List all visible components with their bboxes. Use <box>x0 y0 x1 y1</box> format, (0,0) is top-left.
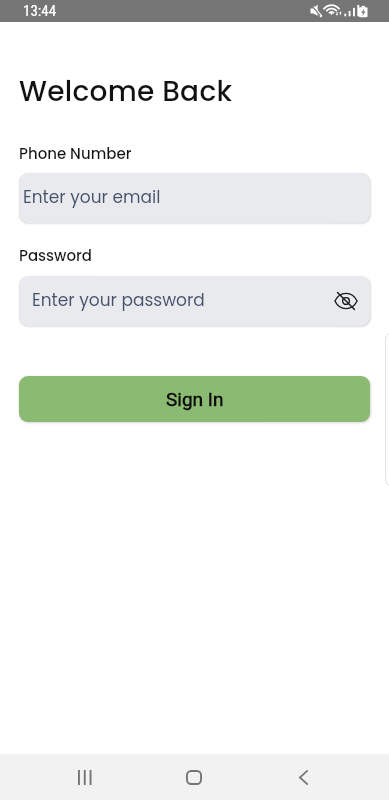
staticText: Welcome Back <box>19 72 233 111</box>
staticText: Enter your password <box>32 288 205 312</box>
button[interactable]: Back <box>283 760 323 794</box>
button[interactable]: Sign In <box>19 376 370 422</box>
staticText: Sign In <box>166 388 224 410</box>
button[interactable]: Toggle password visibility <box>333 288 359 314</box>
staticText: Password <box>19 245 92 266</box>
button[interactable]: Enter your password <box>19 276 370 326</box>
button[interactable]: Home <box>174 760 214 794</box>
staticText: Phone Number <box>19 143 132 164</box>
button[interactable]: Recent apps <box>65 760 105 794</box>
button[interactable]: Enter your email <box>19 173 370 223</box>
staticText: 13:44 <box>23 2 57 20</box>
staticText: Enter your email <box>23 185 161 209</box>
